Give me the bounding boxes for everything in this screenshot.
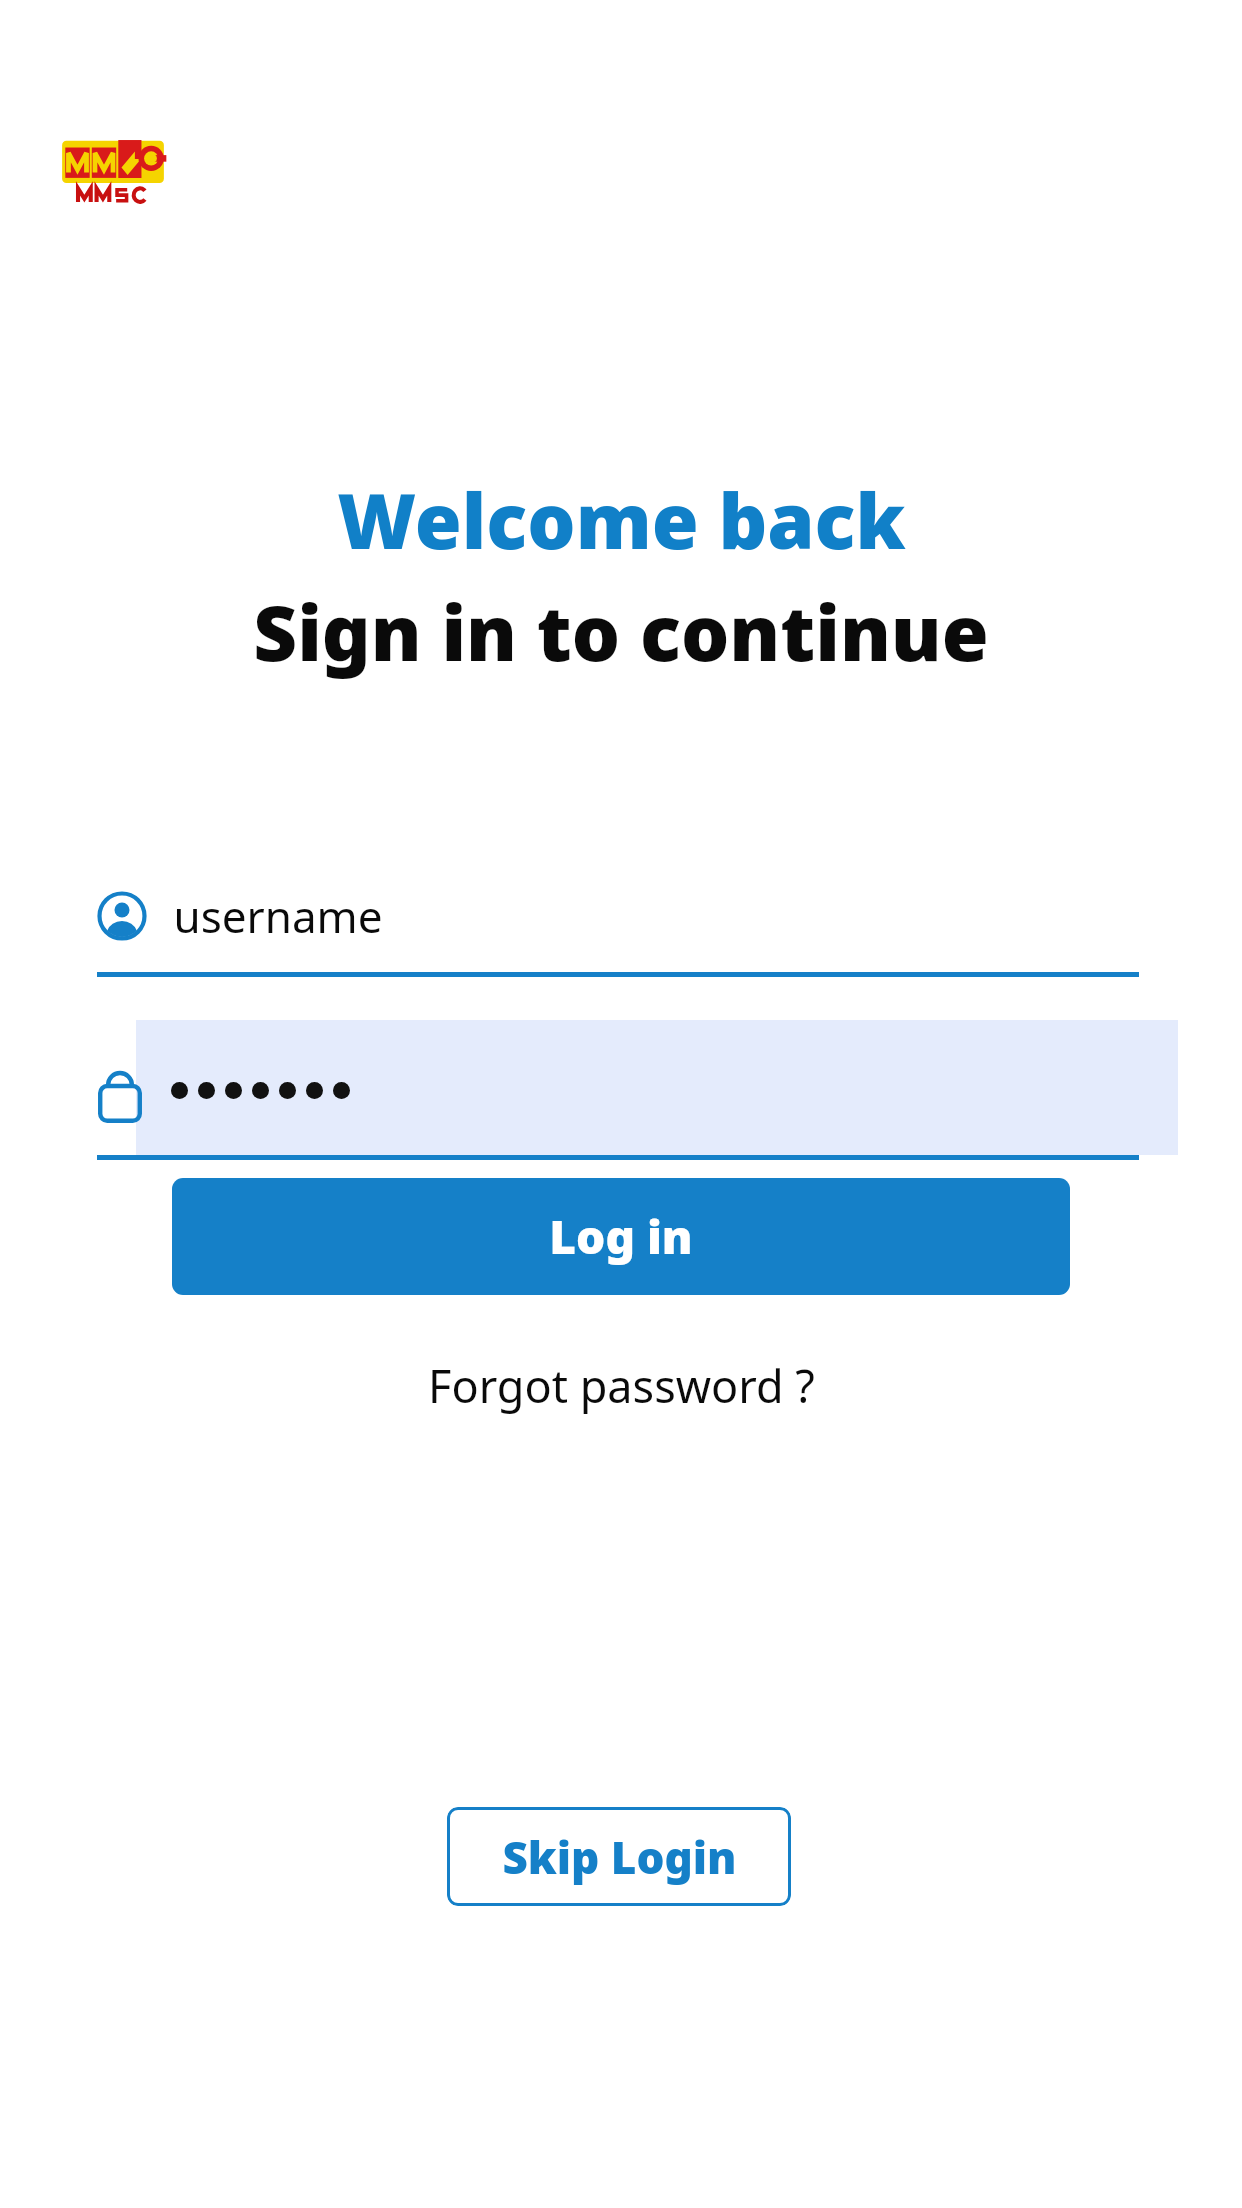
other: MMSC logo <box>60 138 166 206</box>
button[interactable]: Username <box>97 855 1139 977</box>
staticText: Skip Login <box>502 1827 737 1887</box>
button[interactable]: Forgot password ? <box>408 1345 835 1426</box>
staticText: Log in <box>549 1205 693 1268</box>
other: Password <box>97 1057 143 1123</box>
staticText: Forgot password ? <box>428 1355 815 1416</box>
button[interactable]: Skip Login <box>447 1807 791 1906</box>
button[interactable]: Log in <box>172 1178 1070 1295</box>
staticText: username <box>173 886 383 946</box>
staticText: Sign in to continue <box>253 580 989 684</box>
button[interactable]: Password <box>97 1020 1139 1160</box>
other: Username <box>97 891 147 941</box>
staticText: Welcome back <box>337 468 906 572</box>
